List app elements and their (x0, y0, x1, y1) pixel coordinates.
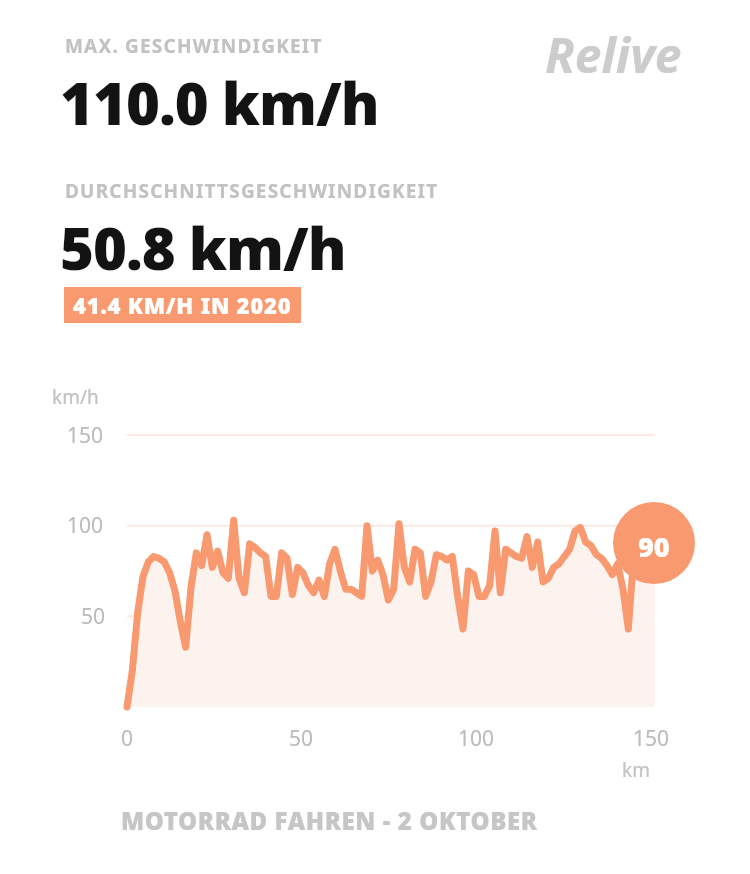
staticText: km/h (52, 384, 99, 410)
button[interactable]: Relive (545, 22, 682, 87)
staticText: 41.4 KM/H IN 2020 (73, 290, 292, 320)
staticText: 110.0 km/h (60, 63, 379, 142)
button[interactable]: Current speed 90 (613, 502, 670, 565)
staticText: 150 (67, 421, 104, 450)
staticText: 90 (638, 528, 670, 565)
staticText: 150 (633, 724, 670, 753)
staticText: DURCHSCHNITTSGESCHWINDIGKEIT (65, 178, 439, 204)
staticText: 50 (81, 602, 106, 631)
button[interactable]: 41.4 KM/H IN 2020 (64, 287, 301, 323)
staticText: 50.8 km/h (60, 208, 346, 287)
staticText: km (622, 757, 650, 783)
staticText: MOTORRAD FAHREN - 2 OKTOBER (121, 804, 538, 837)
staticText: 100 (67, 511, 104, 540)
staticText: MAX. GESCHWINDIGKEIT (65, 33, 323, 59)
staticText: 0 (121, 724, 134, 753)
staticText: 100 (458, 724, 495, 753)
staticText: 50 (289, 724, 314, 753)
